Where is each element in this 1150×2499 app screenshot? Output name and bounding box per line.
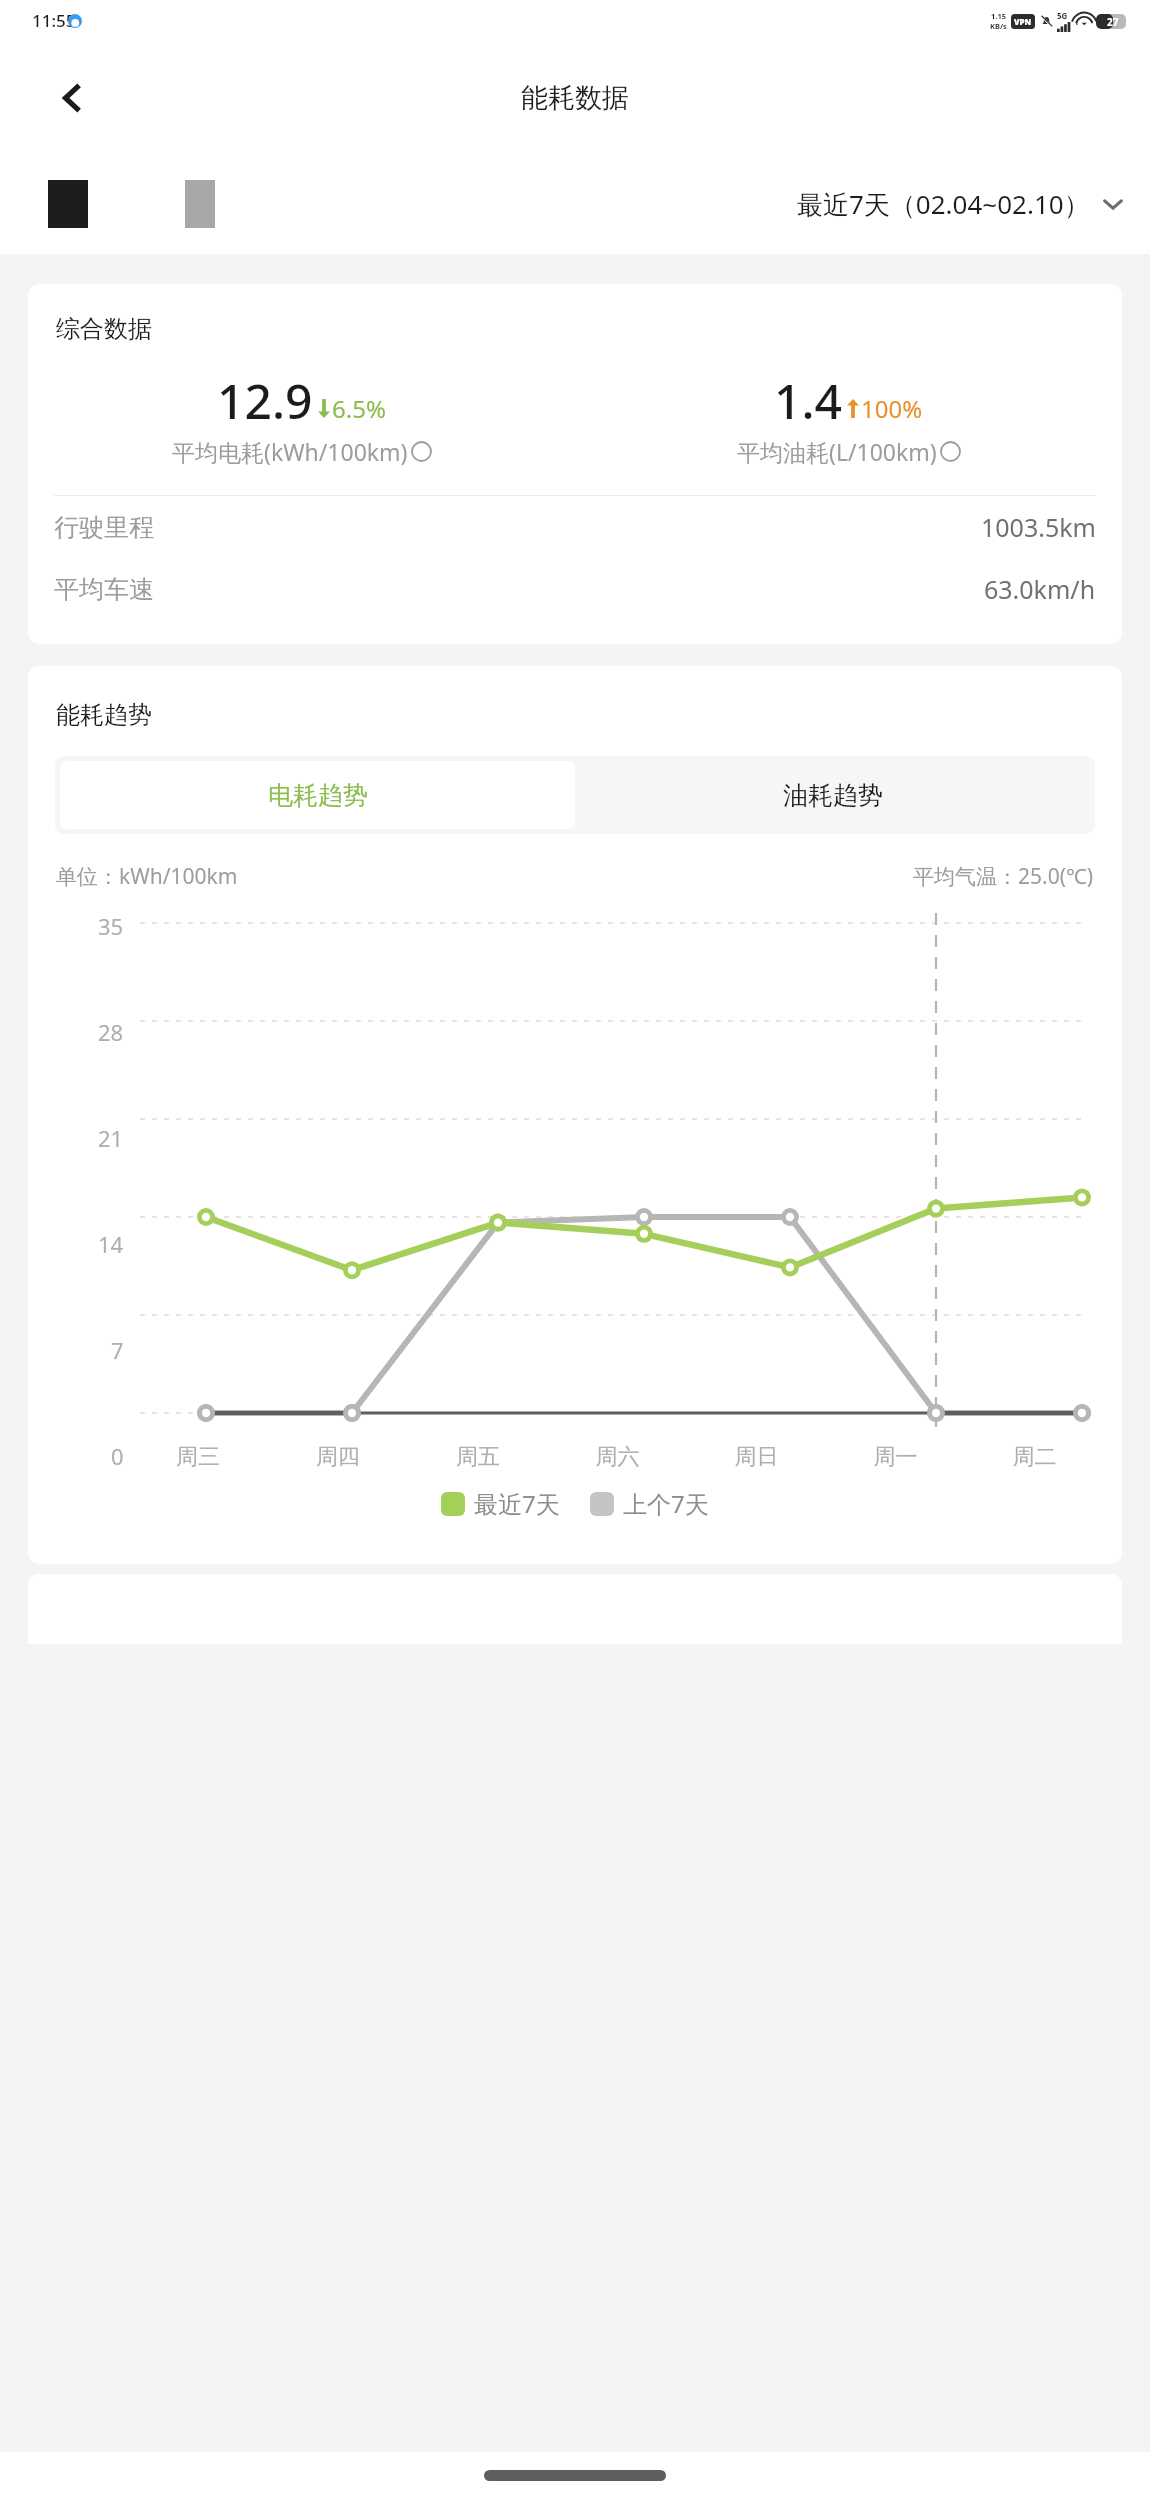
button[interactable]: 油耗趋势 (575, 761, 1090, 829)
staticText: 上个7天 (623, 1487, 709, 1520)
staticText: 周四 (268, 1443, 408, 1471)
button[interactable]: 行驶里程 (28, 496, 1122, 558)
staticText: 35 (98, 911, 124, 941)
staticText: 1.15 (991, 11, 1006, 21)
staticText: 7 (111, 1335, 124, 1365)
staticText: 电耗趋势 (268, 780, 368, 811)
staticText: 周二 (965, 1443, 1104, 1471)
staticText: 最近7天（02.04~02.10） (797, 186, 1090, 222)
staticText: 27 (1107, 15, 1119, 29)
staticText: 100% (861, 392, 923, 425)
staticText: 周三 (128, 1443, 268, 1471)
staticText: 行驶里程 (54, 512, 154, 543)
staticText: KB/s (990, 21, 1007, 31)
other: Info (411, 441, 432, 462)
staticText: 平均油耗(L/100km) (737, 436, 937, 467)
staticText: 1003.5km (981, 510, 1096, 544)
staticText: 0 (111, 1441, 124, 1471)
staticText: 平均电耗(kWh/100km) (172, 436, 408, 467)
staticText: 周五 (408, 1443, 548, 1471)
staticText: 63.0km/h (984, 572, 1096, 606)
button[interactable]: Back (46, 72, 98, 124)
staticText: 能耗趋势 (56, 700, 152, 730)
staticText: 14 (98, 1229, 124, 1259)
staticText: 周日 (687, 1443, 826, 1471)
staticText: 单位：kWh/100km (56, 862, 238, 891)
staticText: 28 (98, 1017, 124, 1047)
staticText: 12.9 (217, 368, 313, 433)
button[interactable]: 最近7天（02.04~02.10） (797, 186, 1126, 222)
staticText: 21 (98, 1123, 124, 1153)
staticText: 油耗趋势 (783, 780, 883, 811)
other: Info (940, 441, 961, 462)
staticText: 周一 (826, 1443, 965, 1471)
staticText: 最近7天 (474, 1487, 560, 1520)
button[interactable]: 上个7天 (590, 1487, 709, 1520)
staticText: 1.4 (774, 368, 842, 433)
staticText: 平均车速 (54, 574, 154, 605)
staticText: 能耗数据 (521, 81, 629, 115)
staticText: 平均气温：25.0(℃) (913, 862, 1094, 891)
staticText: VPN (1014, 16, 1032, 27)
button[interactable]: 电耗趋势 (60, 761, 575, 829)
staticText: 6.5% (332, 392, 386, 425)
staticText: 5G (1057, 10, 1068, 21)
staticText: 综合数据 (56, 314, 152, 344)
staticText: 周六 (548, 1443, 687, 1471)
staticText: 11:55 (32, 9, 76, 32)
button[interactable]: 最近7天 (441, 1487, 560, 1520)
button[interactable]: 平均车速 (28, 558, 1122, 620)
